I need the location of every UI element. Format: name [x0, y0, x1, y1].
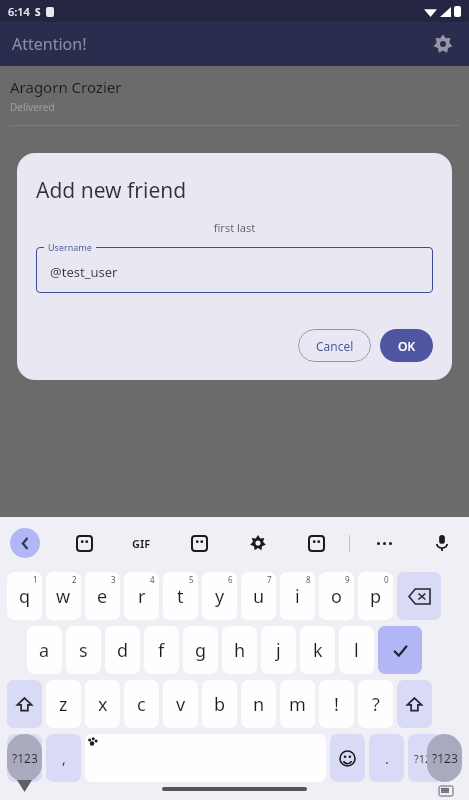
button[interactable]: v: [163, 680, 198, 728]
staticText: ?123: [414, 751, 438, 766]
button[interactable]: u: [241, 572, 276, 620]
staticText: u: [253, 584, 265, 609]
button[interactable]: y: [202, 572, 237, 620]
button[interactable]: k: [300, 626, 335, 674]
button[interactable]: w: [46, 572, 81, 620]
button[interactable]: h: [222, 626, 257, 674]
staticText: 6:14: [8, 4, 30, 19]
button[interactable]: Cancel: [298, 329, 371, 362]
staticText: w: [56, 584, 71, 609]
button[interactable]: Emoji: [330, 734, 365, 782]
staticText: s: [79, 638, 88, 663]
button[interactable]: q: [7, 572, 42, 620]
button[interactable]: ?123: [408, 734, 443, 782]
staticText: f: [158, 638, 165, 663]
staticText: ?123: [432, 750, 458, 766]
button[interactable]: j: [261, 626, 296, 674]
button[interactable]: ,: [46, 734, 81, 782]
staticText: @test_user: [50, 263, 118, 281]
staticText: g: [195, 638, 207, 663]
button[interactable]: f: [144, 626, 179, 674]
button[interactable]: ?: [358, 680, 393, 728]
button[interactable]: Settings: [242, 527, 274, 559]
button[interactable]: Aragorn Crozier: [0, 66, 469, 126]
staticText: d: [117, 638, 129, 663]
staticText: y: [215, 584, 225, 609]
button[interactable]: Theme: [300, 527, 332, 559]
button[interactable]: s: [66, 626, 101, 674]
staticText: ,: [62, 749, 66, 768]
staticText: i: [295, 584, 300, 609]
staticText: 7: [267, 574, 272, 585]
button[interactable]: Shift: [7, 680, 42, 728]
staticText: k: [313, 638, 323, 663]
staticText: Cancel: [316, 338, 354, 354]
staticText: a: [39, 638, 50, 663]
button[interactable]: OK: [380, 329, 433, 362]
button[interactable]: Voice input: [427, 528, 457, 558]
button[interactable]: Backspace: [397, 572, 441, 620]
staticText: ?: [372, 692, 380, 717]
button[interactable]: !: [319, 680, 354, 728]
button[interactable]: ?123: [7, 734, 42, 782]
staticText: GIF: [132, 536, 151, 551]
staticText: c: [137, 692, 146, 717]
button[interactable]: [36, 247, 433, 293]
staticText: Attention!: [12, 33, 87, 55]
button[interactable]: c: [124, 680, 159, 728]
staticText: Aragorn Crozier: [10, 77, 122, 97]
staticText: x: [98, 692, 108, 717]
button[interactable]: Shift: [397, 680, 432, 728]
staticText: .: [385, 749, 389, 768]
button[interactable]: e: [85, 572, 120, 620]
button[interactable]: i: [280, 572, 315, 620]
staticText: 9: [345, 574, 350, 585]
button[interactable]: Enter: [378, 626, 422, 674]
staticText: v: [176, 692, 186, 717]
staticText: OK: [398, 338, 415, 354]
staticText: n: [253, 692, 265, 717]
button[interactable]: r: [124, 572, 159, 620]
button[interactable]: t: [163, 572, 198, 620]
button[interactable]: m: [280, 680, 315, 728]
staticText: m: [289, 692, 306, 717]
staticText: o: [331, 584, 342, 609]
staticText: 5: [189, 574, 194, 585]
staticText: ?123: [13, 751, 37, 766]
button[interactable]: n: [241, 680, 276, 728]
button[interactable]: d: [105, 626, 140, 674]
button[interactable]: More options: [368, 527, 400, 559]
button[interactable]: z: [46, 680, 81, 728]
button[interactable]: Translate: [183, 527, 215, 559]
staticText: first last: [17, 220, 452, 235]
staticText: p: [370, 584, 382, 609]
button[interactable]: GIF: [125, 527, 157, 559]
staticText: ?123: [12, 750, 38, 766]
staticText: 8: [306, 574, 311, 585]
button[interactable]: Space: [85, 734, 326, 782]
staticText: b: [214, 692, 226, 717]
button[interactable]: .: [369, 734, 404, 782]
staticText: 2: [72, 574, 77, 585]
button[interactable]: Back: [10, 528, 40, 558]
button[interactable]: Sticker: [68, 527, 100, 559]
button[interactable]: Settings: [427, 28, 459, 60]
staticText: 6: [228, 574, 233, 585]
button[interactable]: o: [319, 572, 354, 620]
staticText: l: [354, 638, 359, 663]
staticText: j: [276, 638, 281, 663]
button[interactable]: l: [339, 626, 374, 674]
button[interactable]: g: [183, 626, 218, 674]
staticText: q: [19, 584, 31, 609]
staticText: Username: [48, 241, 92, 253]
staticText: S: [35, 5, 41, 19]
button[interactable]: a: [27, 626, 62, 674]
staticText: h: [234, 638, 246, 663]
staticText: 3: [111, 574, 116, 585]
button[interactable]: p: [358, 572, 393, 620]
button[interactable]: x: [85, 680, 120, 728]
staticText: e: [97, 584, 108, 609]
staticText: 1: [33, 574, 38, 585]
button[interactable]: b: [202, 680, 237, 728]
staticText: Add new friend: [36, 176, 187, 205]
